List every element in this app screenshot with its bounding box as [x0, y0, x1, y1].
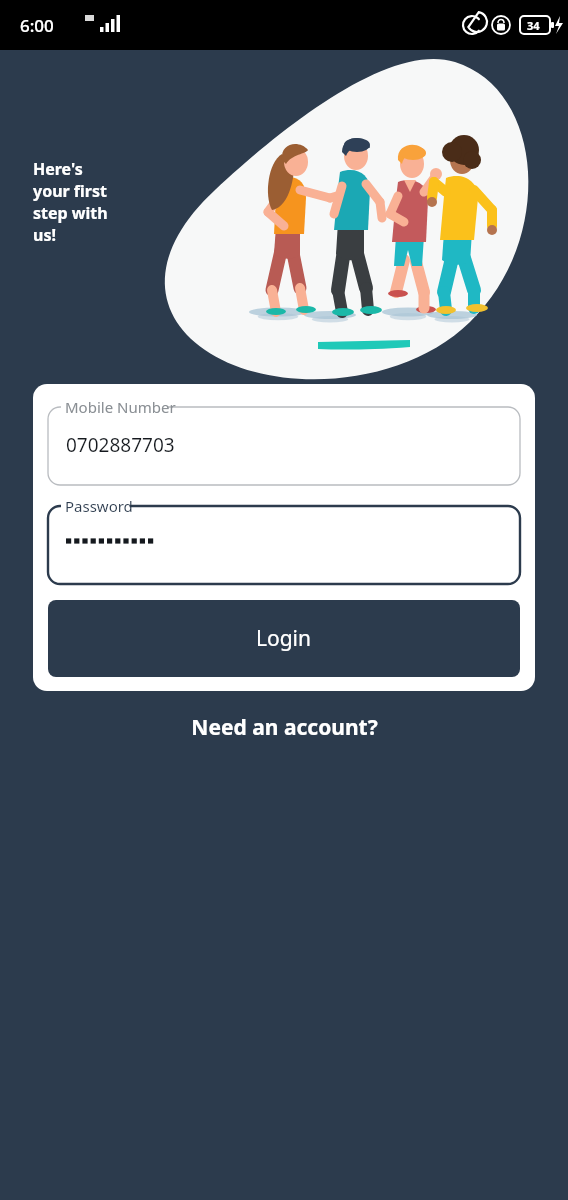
button[interactable]: Login [48, 600, 520, 677]
staticText: Need an account? [191, 713, 378, 742]
staticText: your first [33, 180, 107, 202]
button[interactable]: Need an account? [0, 713, 568, 742]
staticText: Login [256, 624, 312, 653]
staticText: 0702887703 [66, 432, 175, 458]
button[interactable]: Mobile Number [48, 398, 520, 485]
staticText: 34 [527, 18, 540, 33]
staticText: Mobile Number [65, 397, 176, 417]
staticText: us! [33, 224, 56, 246]
staticText: step with [33, 202, 108, 224]
staticText: 6:00 [20, 14, 54, 37]
staticText: Password [65, 496, 133, 516]
staticText: Here's [33, 158, 83, 180]
button[interactable]: Password [48, 497, 520, 584]
